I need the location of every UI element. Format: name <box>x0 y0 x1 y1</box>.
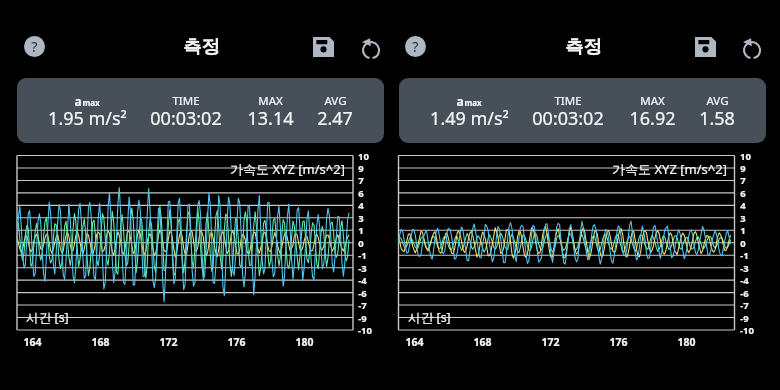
staticText: AVG <box>706 93 729 107</box>
staticText: 측정 <box>183 35 220 58</box>
staticText: 00:03:02 <box>532 106 604 130</box>
button[interactable]: Help <box>405 36 426 57</box>
staticText: 3 <box>358 212 364 224</box>
button[interactable]: Save <box>308 32 338 62</box>
staticText: -9 <box>740 312 749 324</box>
staticText: 1.95 m/s² <box>48 106 127 130</box>
staticText: 168 <box>473 335 492 348</box>
staticText: 164 <box>23 335 42 348</box>
staticText: 4 <box>358 199 364 211</box>
staticText: 7 <box>358 174 364 186</box>
button[interactable]: a <box>17 78 384 143</box>
staticText: 2.47 <box>317 106 353 130</box>
staticText: 가속도 XYZ [m/s^2] <box>612 160 727 177</box>
button[interactable]: a <box>399 78 766 143</box>
staticText: 가속도 XYZ [m/s^2] <box>230 160 345 177</box>
staticText: -1 <box>740 249 749 261</box>
staticText: -7 <box>740 299 749 311</box>
staticText: -10 <box>740 324 754 336</box>
staticText: 16.92 <box>629 106 676 130</box>
staticText: ? <box>31 37 38 56</box>
staticText: 168 <box>91 335 110 348</box>
staticText: -3 <box>358 262 367 274</box>
staticText: a <box>74 93 82 107</box>
staticText: 6 <box>740 187 746 199</box>
staticText: a <box>456 93 464 107</box>
staticText: -9 <box>358 312 367 324</box>
staticText: -6 <box>740 287 749 299</box>
staticText: 00:03:02 <box>150 106 222 130</box>
staticText: TIME <box>554 93 582 107</box>
staticText: max <box>82 97 100 108</box>
staticText: -4 <box>740 274 749 286</box>
staticText: 9 <box>358 162 364 174</box>
staticText: 시간 [s] <box>26 309 69 325</box>
staticText: MAX <box>640 93 665 107</box>
staticText: ? <box>412 37 419 56</box>
staticText: 10 <box>740 150 751 162</box>
staticText: MAX <box>258 93 283 107</box>
staticText: 6 <box>358 187 364 199</box>
staticText: 1 <box>358 224 364 236</box>
staticText: 9 <box>740 162 746 174</box>
button[interactable]: Save <box>690 32 720 62</box>
staticText: 164 <box>405 335 424 348</box>
staticText: -10 <box>358 324 372 336</box>
staticText: 176 <box>227 335 246 348</box>
staticText: 10 <box>358 150 369 162</box>
staticText: -4 <box>358 274 367 286</box>
button[interactable]: Reset <box>737 33 767 63</box>
staticText: 172 <box>541 335 560 348</box>
staticText: 13.14 <box>247 106 294 130</box>
staticText: -1 <box>358 249 367 261</box>
staticText: 1.49 m/s² <box>430 106 509 130</box>
staticText: 172 <box>159 335 178 348</box>
staticText: 1 <box>740 224 746 236</box>
staticText: 176 <box>609 335 628 348</box>
button[interactable]: Help <box>24 36 45 57</box>
staticText: 4 <box>740 199 746 211</box>
staticText: max <box>464 97 482 108</box>
staticText: -6 <box>358 287 367 299</box>
staticText: TIME <box>172 93 200 107</box>
staticText: AVG <box>324 93 347 107</box>
button[interactable]: Reset <box>356 33 386 63</box>
staticText: 시간 [s] <box>408 309 451 325</box>
staticText: -7 <box>358 299 367 311</box>
staticText: -3 <box>740 262 749 274</box>
staticText: 0 <box>740 237 746 249</box>
staticText: 0 <box>358 237 364 249</box>
staticText: 7 <box>740 174 746 186</box>
staticText: 1.58 <box>699 106 735 130</box>
staticText: 180 <box>677 335 696 348</box>
staticText: 3 <box>740 212 746 224</box>
staticText: 180 <box>295 335 314 348</box>
staticText: 측정 <box>565 35 602 58</box>
